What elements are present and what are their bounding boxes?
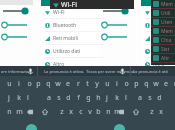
button[interactable]: o bbox=[24, 78, 34, 90]
button[interactable]: s bbox=[145, 92, 155, 104]
button[interactable]: m bbox=[113, 106, 122, 118]
staticText: q bbox=[46, 79, 51, 89]
staticText: l bbox=[27, 93, 29, 103]
button[interactable]: Maiuscole bbox=[131, 106, 141, 118]
button[interactable] bbox=[101, 20, 129, 30]
staticText: t bbox=[86, 79, 89, 89]
button[interactable]: i bbox=[14, 78, 24, 90]
staticText: f bbox=[77, 93, 80, 103]
button[interactable] bbox=[1, 6, 29, 16]
staticText: Utilizzo dati bbox=[153, 48, 175, 55]
button[interactable]: p bbox=[131, 78, 141, 90]
button[interactable]: Altr bbox=[151, 54, 175, 62]
button[interactable]: q bbox=[141, 78, 151, 90]
button[interactable]: r bbox=[73, 78, 83, 90]
button[interactable]: k bbox=[112, 92, 122, 104]
button[interactable]: g bbox=[83, 92, 93, 104]
button[interactable]: w bbox=[53, 78, 63, 90]
staticText: z bbox=[150, 107, 154, 117]
staticText: Bluetooth bbox=[53, 22, 77, 29]
button[interactable]: Utilizzo dati bbox=[41, 45, 100, 57]
button[interactable]: d bbox=[63, 92, 73, 104]
button[interactable]: Backspace bbox=[25, 106, 35, 118]
button[interactable]: Chia bbox=[151, 36, 175, 44]
button[interactable]: Mem bbox=[151, 27, 175, 35]
button[interactable]: Invio bbox=[26, 124, 37, 130]
button[interactable]: k bbox=[14, 92, 24, 104]
button[interactable]: w bbox=[151, 78, 161, 90]
staticText: La pronuncia è attiva. Tocca per avere i… bbox=[44, 69, 135, 74]
button[interactable]: Bluetooth bbox=[41, 19, 100, 31]
button[interactable]: Wi-Fi bbox=[141, 6, 175, 18]
button[interactable]: v bbox=[85, 106, 94, 118]
button[interactable]: p bbox=[33, 78, 43, 90]
staticText: d bbox=[66, 93, 71, 103]
button[interactable]: Sist bbox=[151, 45, 175, 53]
button[interactable]: Reti mobili bbox=[41, 32, 100, 44]
button[interactable]: Mem bbox=[151, 0, 175, 8]
button[interactable]: z bbox=[147, 106, 156, 118]
button[interactable]: Utili bbox=[151, 9, 175, 17]
staticText: Altro bbox=[53, 61, 65, 68]
staticText: s bbox=[57, 93, 61, 103]
button[interactable]: z bbox=[57, 106, 66, 118]
button[interactable]: Reti mobili bbox=[141, 32, 175, 44]
button[interactable] bbox=[1, 32, 29, 42]
button[interactable]: n bbox=[4, 106, 14, 118]
button[interactable] bbox=[101, 6, 129, 16]
staticText: Altro bbox=[153, 61, 165, 68]
button[interactable]: u bbox=[4, 78, 14, 90]
button[interactable]: x bbox=[156, 106, 165, 118]
staticText: a bbox=[47, 93, 51, 103]
button[interactable]: e bbox=[63, 78, 73, 90]
button[interactable]: Utilizzo dati bbox=[141, 45, 175, 57]
button[interactable]: Microfono bbox=[118, 66, 127, 76]
button[interactable]: Maiuscole bbox=[40, 106, 50, 118]
button[interactable]: u bbox=[102, 78, 112, 90]
button[interactable]: Wi-Fi bbox=[50, 0, 134, 9]
button[interactable]: r bbox=[170, 78, 175, 90]
staticText: l bbox=[125, 93, 127, 103]
button[interactable]: f bbox=[73, 92, 83, 104]
staticText: q bbox=[144, 79, 149, 89]
button[interactable]: q bbox=[43, 78, 53, 90]
button[interactable]: m bbox=[14, 106, 24, 118]
button[interactable]: o bbox=[121, 78, 131, 90]
staticText: Bluetooth bbox=[153, 22, 175, 29]
button[interactable]: i bbox=[112, 78, 122, 90]
button[interactable] bbox=[101, 32, 129, 42]
button[interactable]: a bbox=[44, 92, 54, 104]
staticText: m bbox=[114, 107, 121, 117]
button[interactable]: l bbox=[121, 92, 131, 104]
button[interactable]: n bbox=[104, 106, 113, 118]
staticText: s bbox=[148, 93, 152, 103]
button[interactable]: s bbox=[54, 92, 64, 104]
button[interactable]: Wi-Fi bbox=[41, 6, 100, 18]
button[interactable] bbox=[1, 20, 29, 30]
button[interactable]: Altro bbox=[141, 58, 175, 70]
button[interactable]: c bbox=[76, 106, 85, 118]
button[interactable]: h bbox=[93, 92, 103, 104]
staticText: k bbox=[17, 93, 21, 103]
button[interactable]: l bbox=[23, 92, 33, 104]
staticText: w bbox=[55, 79, 61, 89]
button[interactable]: a bbox=[135, 92, 145, 104]
button[interactable]: j bbox=[102, 92, 112, 104]
button[interactable]: Invio bbox=[114, 124, 125, 130]
staticText: c bbox=[79, 107, 83, 117]
button[interactable]: b bbox=[94, 106, 103, 118]
button[interactable]: Altro bbox=[41, 58, 100, 70]
button[interactable]: Backspace bbox=[116, 106, 126, 118]
button[interactable]: x bbox=[66, 106, 75, 118]
button[interactable]: d bbox=[154, 92, 164, 104]
staticText: h bbox=[96, 93, 101, 103]
staticText: Chia bbox=[161, 37, 172, 44]
button[interactable]: Microfono bbox=[26, 66, 35, 76]
button[interactable]: t bbox=[82, 78, 92, 90]
button[interactable]: j bbox=[4, 92, 14, 104]
button[interactable]: Uten bbox=[151, 18, 175, 26]
button[interactable]: e bbox=[161, 78, 171, 90]
button[interactable]: Bluetooth bbox=[141, 19, 175, 31]
button[interactable]: y bbox=[92, 78, 102, 90]
staticText: g bbox=[86, 93, 91, 103]
